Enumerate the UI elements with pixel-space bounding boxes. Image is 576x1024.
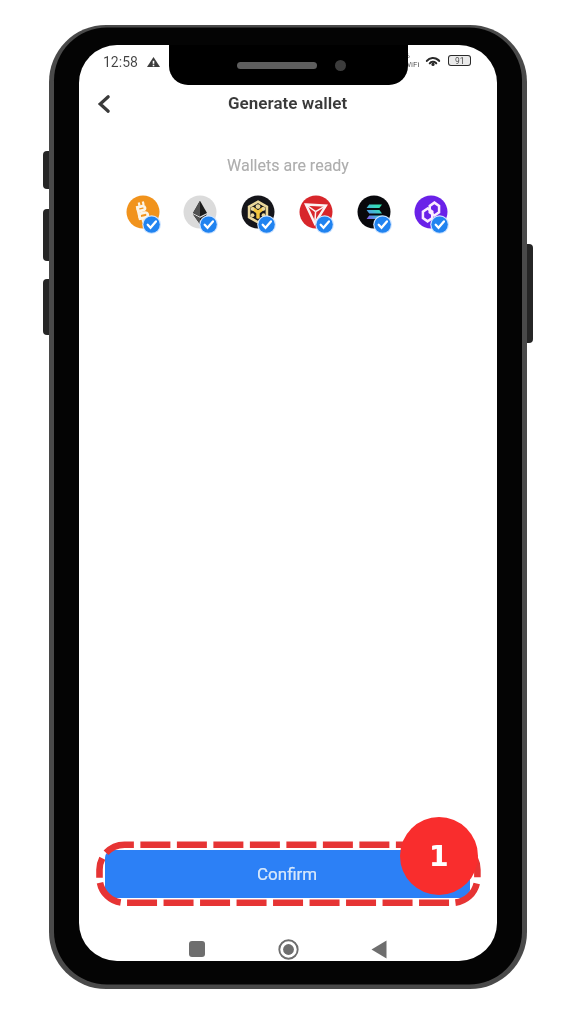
staticText: Generate wallet	[228, 93, 348, 113]
button[interactable]: Back	[359, 931, 399, 961]
staticText: 91	[455, 56, 465, 65]
staticText: WiFi	[404, 60, 420, 69]
button[interactable]: Recents	[177, 931, 217, 961]
staticText: %	[404, 51, 410, 60]
button[interactable]: wallet 6	[409, 190, 453, 234]
staticText: 1	[429, 840, 449, 873]
button[interactable]: wallet 2	[178, 190, 222, 234]
staticText: Confirm	[257, 864, 318, 884]
button[interactable]: wallet 5	[352, 190, 396, 234]
staticText: Wallets are ready	[79, 156, 497, 175]
button[interactable]: wallet 4	[294, 190, 338, 234]
button[interactable]: Confirm	[105, 850, 470, 898]
staticText: 12:58	[103, 54, 138, 70]
button[interactable]: wallet 3	[236, 190, 280, 234]
button[interactable]: Back	[83, 83, 125, 125]
button[interactable]: wallet 1	[121, 190, 165, 234]
button[interactable]: Home	[268, 931, 308, 961]
